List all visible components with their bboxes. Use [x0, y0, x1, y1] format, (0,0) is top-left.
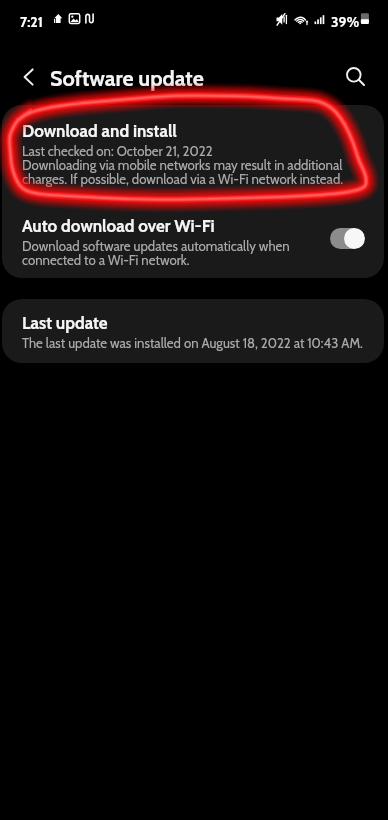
button[interactable]: Auto download over Wi-Fi [330, 228, 365, 249]
button[interactable]: Navigate up [11, 59, 47, 95]
button[interactable]: Last update [2, 299, 384, 363]
staticText: Last checked on: October 21, 2022 Downlo… [22, 143, 343, 188]
staticText: Download software updates automatically … [22, 238, 290, 269]
staticText: Last update [22, 313, 108, 334]
staticText: Download and install [22, 121, 177, 142]
button[interactable]: Search [338, 59, 374, 95]
staticText: Software update [50, 65, 204, 91]
button[interactable]: Auto download over Wi-Fi [2, 201, 384, 278]
button[interactable]: Download and install [2, 105, 384, 201]
staticText: 39% [331, 13, 360, 30]
staticText: 7:21 [20, 13, 43, 30]
staticText: Auto download over Wi-Fi [22, 216, 215, 237]
staticText: The last update was installed on August … [22, 335, 363, 351]
